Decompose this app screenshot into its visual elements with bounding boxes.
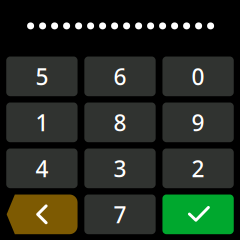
staticText: 5 [35,61,48,91]
button[interactable]: 5 [6,56,78,96]
button[interactable]: 3 [84,148,156,188]
staticText: 7 [113,199,126,229]
button[interactable]: 1 [6,102,78,142]
button[interactable]: 0 [162,56,234,96]
button[interactable]: 9 [162,102,234,142]
button[interactable]: Confirm [162,194,234,234]
staticText: 3 [113,153,126,183]
button[interactable]: Delete [6,194,78,234]
staticText: 4 [35,153,48,183]
staticText: 9 [192,107,205,137]
button[interactable]: 6 [84,56,156,96]
staticText: 0 [192,61,205,91]
button[interactable]: 4 [6,148,78,188]
staticText: 2 [192,153,205,183]
staticText: 8 [113,107,126,137]
staticText: 1 [35,107,48,137]
button[interactable]: 2 [162,148,234,188]
button[interactable]: 8 [84,102,156,142]
button[interactable]: 7 [84,194,156,234]
staticText: 6 [113,61,126,91]
